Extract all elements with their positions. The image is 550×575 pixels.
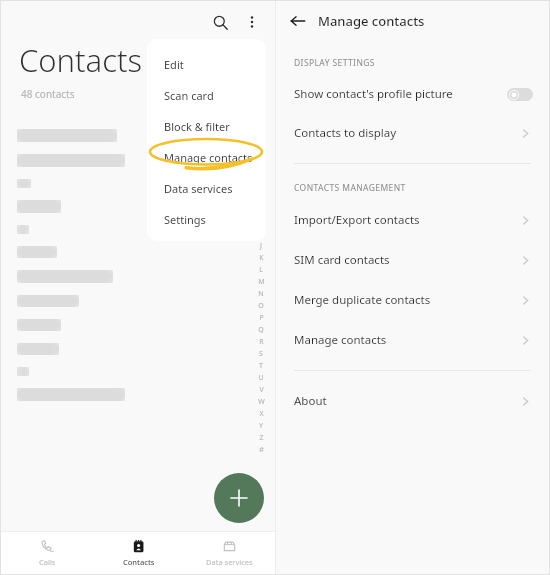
staticText: O bbox=[258, 301, 264, 313]
staticText: N bbox=[258, 289, 264, 301]
staticText: Manage contacts bbox=[318, 12, 425, 30]
staticText: Q bbox=[258, 325, 264, 337]
staticText: About bbox=[294, 393, 327, 409]
button[interactable]: SIM card contacts bbox=[276, 240, 549, 280]
button[interactable]: Manage contacts bbox=[276, 320, 549, 360]
staticText: Data services bbox=[164, 181, 233, 196]
staticText: SIM card contacts bbox=[294, 252, 390, 268]
button[interactable]: Show contact's profile picture bbox=[276, 75, 549, 113]
button[interactable]: More options bbox=[239, 9, 265, 35]
button[interactable]: Contacts to display bbox=[276, 113, 549, 153]
staticText: Import/Export contacts bbox=[294, 212, 420, 228]
staticText: U bbox=[258, 373, 264, 385]
staticText: Contacts bbox=[123, 557, 155, 567]
staticText: Contacts bbox=[19, 39, 143, 81]
staticText: R bbox=[259, 337, 264, 349]
button[interactable]: Calls bbox=[1, 532, 93, 574]
staticText: P bbox=[259, 313, 264, 325]
button[interactable]: Manage contacts bbox=[147, 142, 266, 173]
staticText: Settings bbox=[164, 212, 206, 227]
staticText: S bbox=[259, 349, 263, 361]
staticText: 48 contacts bbox=[21, 87, 75, 101]
button[interactable] bbox=[507, 88, 533, 101]
staticText: Contacts to display bbox=[294, 125, 397, 141]
staticText: Manage contacts bbox=[164, 150, 253, 165]
button[interactable]: Merge duplicate contacts bbox=[276, 280, 549, 320]
staticText: Manage contacts bbox=[294, 332, 387, 348]
staticText: # bbox=[259, 445, 264, 457]
button[interactable]: Add contact bbox=[214, 473, 264, 523]
staticText: M bbox=[258, 277, 265, 289]
staticText: Y bbox=[259, 421, 263, 433]
staticText: Edit bbox=[164, 57, 184, 72]
staticText: K bbox=[259, 253, 264, 265]
staticText: L bbox=[259, 265, 263, 277]
staticText: Block & filter bbox=[164, 119, 230, 134]
staticText: Scan card bbox=[164, 88, 214, 103]
staticText: Show contact's profile picture bbox=[294, 86, 453, 102]
button[interactable]: Edit bbox=[147, 49, 266, 80]
staticText: J bbox=[260, 241, 262, 253]
staticText: T bbox=[259, 361, 263, 373]
staticText: X bbox=[259, 409, 264, 421]
button[interactable]: About bbox=[276, 381, 549, 421]
button[interactable]: Search bbox=[207, 9, 233, 35]
button[interactable]: Settings bbox=[147, 204, 266, 235]
staticText: W bbox=[258, 397, 265, 409]
button[interactable]: Import/Export contacts bbox=[276, 200, 549, 240]
button[interactable]: Scan card bbox=[147, 80, 266, 111]
button[interactable]: Data services bbox=[147, 173, 266, 204]
staticText: Z bbox=[259, 433, 264, 445]
button[interactable]: Data services bbox=[184, 532, 275, 574]
staticText: V bbox=[259, 385, 264, 397]
staticText: Data services bbox=[206, 557, 253, 567]
staticText: Merge duplicate contacts bbox=[294, 292, 431, 308]
staticText: DISPLAY SETTINGS bbox=[294, 57, 375, 69]
staticText: CONTACTS MANAGEMENT bbox=[294, 182, 406, 194]
staticText: Calls bbox=[39, 557, 56, 567]
button[interactable]: Contacts bbox=[93, 532, 184, 574]
button[interactable]: Block & filter bbox=[147, 111, 266, 142]
button[interactable]: Back bbox=[284, 7, 312, 35]
